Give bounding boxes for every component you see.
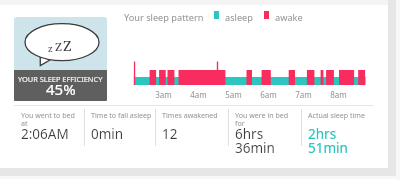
staticText: 6am (260, 89, 277, 100)
button[interactable]: Actual sleep time (301, 106, 374, 150)
staticText: Time to fall asleep (91, 110, 152, 120)
staticText: 2hrs 51min (308, 125, 371, 157)
staticText: Times awakened (162, 110, 225, 120)
button[interactable]: Time to fall asleep (84, 106, 155, 150)
button[interactable]: Times awakened (155, 106, 228, 150)
staticText: asleep (225, 11, 253, 24)
staticText: 3am (155, 89, 172, 100)
staticText: Z (55, 39, 63, 55)
staticText: awake (275, 11, 303, 24)
staticText: 7am (295, 89, 312, 100)
staticText: z (48, 42, 53, 54)
staticText: 2:06AM (21, 125, 81, 143)
staticText: 6hrs 36min (235, 125, 298, 157)
staticText: YOUR SLEEP EFFICIENCY (18, 74, 103, 84)
staticText: 12 (162, 125, 225, 143)
button[interactable]: z (14, 17, 107, 101)
staticText: 8am (330, 89, 347, 100)
staticText: 45% (46, 79, 76, 96)
staticText: 0min (91, 125, 152, 143)
staticText: You went to bed at (21, 110, 81, 128)
staticText: Z (63, 36, 72, 55)
staticText: Actual sleep time (308, 110, 371, 120)
staticText: Your sleep pattern (124, 11, 204, 24)
button[interactable]: You were in bed for (228, 106, 301, 150)
button[interactable]: You went to bed at (14, 106, 84, 150)
staticText: 5am (225, 89, 242, 100)
staticText: You were in bed for (235, 110, 298, 128)
staticText: 4am (190, 89, 207, 100)
